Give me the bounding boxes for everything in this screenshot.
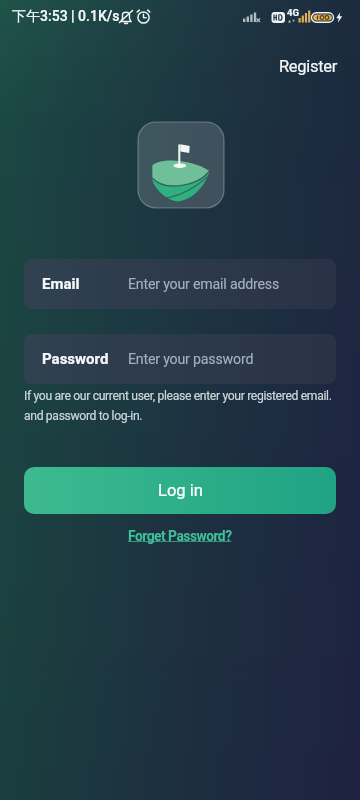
staticText: Email (42, 275, 80, 293)
button[interactable]: Forget Password? (124, 524, 236, 548)
staticText: Enter your email address (128, 276, 280, 293)
staticText: Register (279, 57, 338, 76)
staticText: Forget Password? (128, 528, 232, 544)
staticText: If you are our current user, please ente… (24, 389, 332, 423)
button[interactable]: Register (273, 51, 344, 82)
staticText: Log in (158, 481, 203, 500)
staticText: 4G (287, 7, 299, 18)
button[interactable]: Password (24, 334, 336, 384)
button[interactable]: Email (24, 259, 336, 309)
staticText: Password (42, 350, 109, 368)
staticText: 下午3:53 | 0.1K/s (12, 8, 120, 26)
staticText: Enter your password (128, 351, 254, 368)
button[interactable]: Log in (24, 467, 336, 514)
